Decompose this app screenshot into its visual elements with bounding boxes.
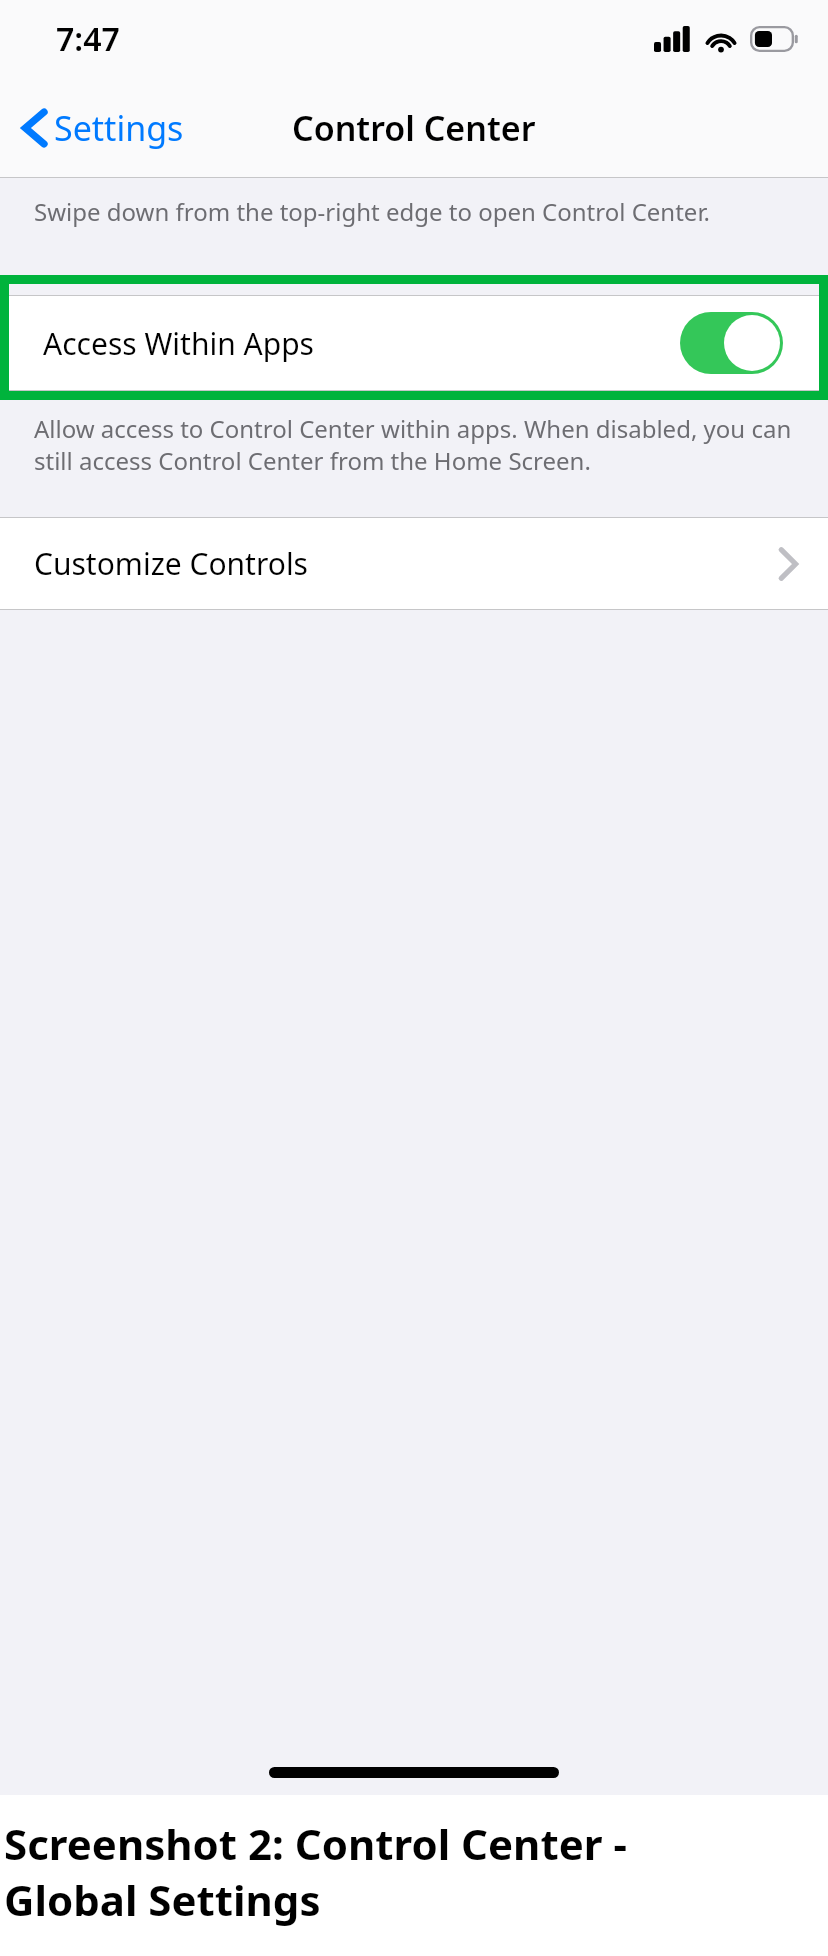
button[interactable]: Access Within Apps toggle, on: [680, 312, 783, 374]
staticText: Screenshot 2: Control Center - Global Se…: [4, 1815, 708, 1928]
staticText: Allow access to Control Center within ap…: [34, 412, 798, 477]
other: Open Customize Controls: [778, 547, 798, 581]
staticText: Access Within Apps: [43, 323, 680, 364]
button[interactable]: Settings: [0, 97, 200, 159]
staticText: Control Center: [292, 105, 536, 151]
button[interactable]: Access Within Apps: [9, 296, 819, 390]
button[interactable]: Customize Controls: [0, 518, 828, 609]
staticText: 7:47: [56, 17, 120, 61]
staticText: Swipe down from the top-right edge to op…: [34, 195, 710, 228]
staticText: Customize Controls: [34, 543, 778, 584]
staticText: Settings: [54, 105, 184, 151]
